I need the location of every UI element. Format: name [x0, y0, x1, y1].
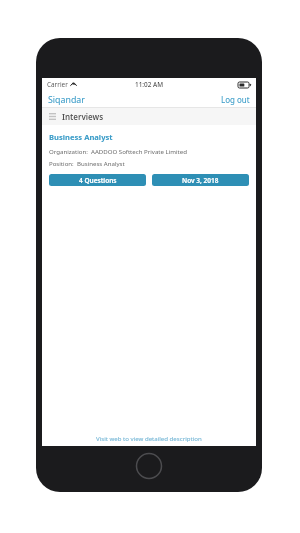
button[interactable]: Business Analyst: [42, 125, 256, 191]
staticText: Position:: [49, 159, 74, 167]
staticText: Visit web to view detailed description: [96, 434, 202, 442]
staticText: AADDOO Softtech Private Limited: [91, 147, 187, 155]
button[interactable]: Visit web to view detailed description: [92, 432, 206, 444]
button[interactable]: Nov 3, 2018: [152, 174, 249, 186]
staticText: Log out: [221, 94, 250, 105]
staticText: 11:02 AM: [135, 80, 164, 89]
staticText: 4 Questions: [79, 176, 117, 185]
button[interactable]: Home: [135, 452, 163, 480]
button[interactable]: Siqandar: [42, 92, 89, 108]
staticText: Siqandar: [48, 94, 85, 106]
button[interactable]: 4 Questions: [49, 174, 146, 186]
staticText: Business Analyst: [77, 159, 125, 167]
staticText: Interviews: [62, 111, 104, 122]
staticText: Nov 3, 2018: [182, 176, 219, 185]
staticText: Organization:: [49, 147, 88, 155]
button[interactable]: Log out: [217, 92, 256, 107]
staticText: Carrier: [47, 80, 68, 89]
staticText: Business Analyst: [49, 132, 113, 142]
button[interactable]: Interviews: [42, 108, 256, 125]
